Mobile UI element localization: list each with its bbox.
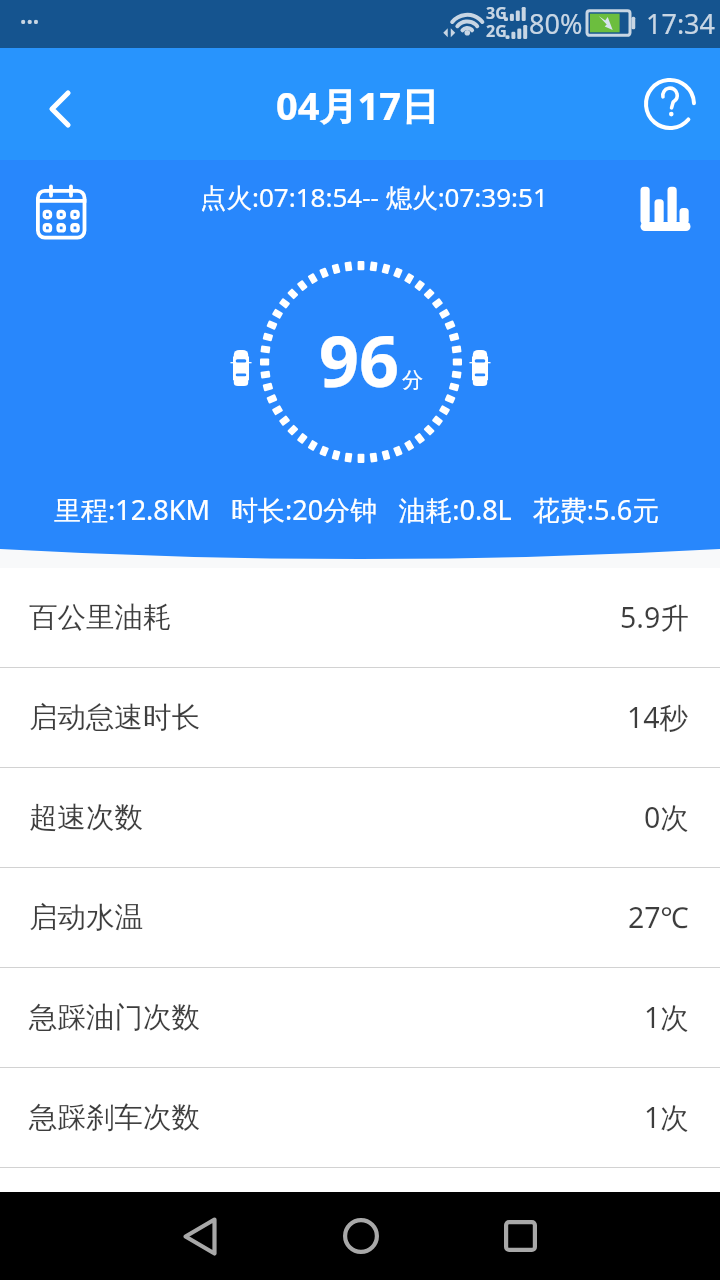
button[interactable]: 急踩刹车次数 [0,1068,720,1167]
button[interactable]: 启动水温 [0,868,720,967]
button[interactable]: 启动怠速时长 [0,668,720,767]
staticText: 启动怠速时长 [29,700,200,736]
button[interactable]: Statistics [622,165,708,251]
button[interactable]: Home [317,1192,405,1280]
button[interactable]: Recents [476,1192,564,1280]
staticText: 急踩刹车次数 [29,1100,200,1136]
button[interactable]: Back [156,1192,244,1280]
staticText: 04月17日 [276,79,439,127]
staticText: 5.9升 [620,598,689,637]
staticText: 急踩油门次数 [29,1000,200,1036]
staticText: 2G [486,20,507,42]
button[interactable]: 急踩油门次数 [0,968,720,1067]
staticText: 80% [529,5,583,42]
staticText: 0次 [644,798,689,837]
staticText: 27℃ [628,898,689,937]
button[interactable]: Help [620,48,720,160]
staticText: 点火:07:18:54-- 熄火:07:39:51 [200,179,548,215]
staticText: 百公里油耗 [29,600,172,636]
staticText: 14秒 [627,698,689,737]
button[interactable]: 百公里油耗 [0,568,720,667]
staticText: 里程:12.8KM 时长:20分钟 油耗:0.8L 花费:5.6元 [54,491,660,528]
staticText: 17:34 [646,5,716,42]
button[interactable]: 超速次数 [0,768,720,867]
staticText: 超速次数 [29,800,143,836]
staticText: 分 [402,367,423,393]
staticText: ••• [20,10,40,33]
button[interactable]: Calendar [18,171,104,257]
button[interactable]: Back [4,53,116,165]
staticText: 96 [319,312,400,402]
staticText: 启动水温 [29,900,143,936]
staticText: 1次 [644,998,689,1037]
staticText: 1次 [644,1098,689,1137]
staticText: 3G [486,2,507,24]
